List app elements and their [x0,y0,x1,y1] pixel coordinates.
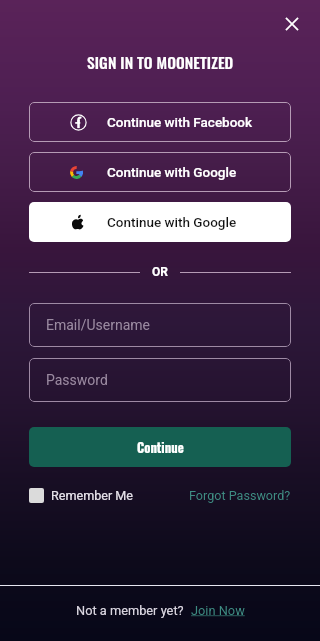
button[interactable]: Continue with Facebook [29,102,291,142]
button[interactable]: Continue with Google [29,152,291,192]
button[interactable]: Forgot Password? [189,488,291,503]
button[interactable]: Close [276,8,308,40]
staticText: Continue with Facebook [107,114,253,130]
staticText: Continue with Google [107,214,237,230]
button[interactable]: Remember Me [29,488,134,503]
staticText: SIGN IN TO MOONETIZED [87,51,234,74]
button[interactable]: Join Now [191,603,245,618]
button[interactable]: Continue with Google [29,202,291,242]
button[interactable]: Email/Username [29,303,291,347]
staticText: Email/Username [46,317,150,333]
button[interactable]: Continue [29,427,291,467]
staticText: Not a member yet? [76,603,184,618]
staticText: Continue with Google [107,164,237,180]
button[interactable]: Password [29,358,291,402]
staticText: OR [152,265,168,279]
staticText: Password [46,372,108,388]
staticText: Join Now [191,603,245,618]
staticText: Continue [137,438,184,457]
staticText: Remember Me [51,488,134,503]
staticText: Forgot Password? [189,488,291,503]
